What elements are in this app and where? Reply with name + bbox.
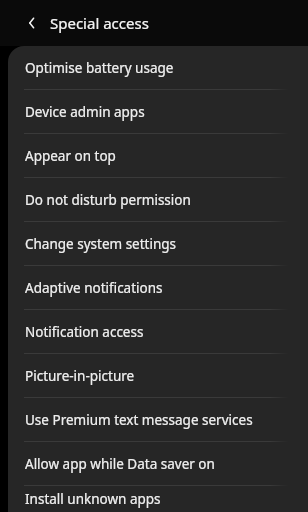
button[interactable]: Navigate up — [18, 9, 46, 37]
staticText: Notification access — [25, 323, 144, 341]
staticText: Device admin apps — [25, 103, 145, 121]
staticText: Optimise battery usage — [25, 59, 174, 77]
button[interactable]: Adaptive notifications — [8, 266, 308, 309]
staticText: Do not disturb permission — [25, 191, 191, 209]
button[interactable]: Optimise battery usage — [8, 46, 308, 89]
staticText: Special access — [50, 13, 149, 33]
button[interactable]: Notification access — [8, 310, 308, 353]
staticText: Picture-in-picture — [25, 367, 135, 385]
button[interactable]: Device admin apps — [8, 90, 308, 133]
button[interactable]: Do not disturb permission — [8, 178, 308, 221]
staticText: Appear on top — [25, 147, 116, 165]
staticText: Use Premium text message services — [25, 411, 253, 429]
staticText: Install unknown apps — [25, 490, 161, 508]
button[interactable]: Picture-in-picture — [8, 354, 308, 397]
button[interactable]: Install unknown apps — [8, 486, 308, 512]
staticText: Change system settings — [25, 235, 177, 253]
button[interactable]: Allow app while Data saver on — [8, 442, 308, 485]
button[interactable]: Change system settings — [8, 222, 308, 265]
staticText: Allow app while Data saver on — [25, 455, 215, 473]
button[interactable]: Use Premium text message services — [8, 398, 308, 441]
staticText: Adaptive notifications — [25, 279, 163, 297]
button[interactable]: Appear on top — [8, 134, 308, 177]
